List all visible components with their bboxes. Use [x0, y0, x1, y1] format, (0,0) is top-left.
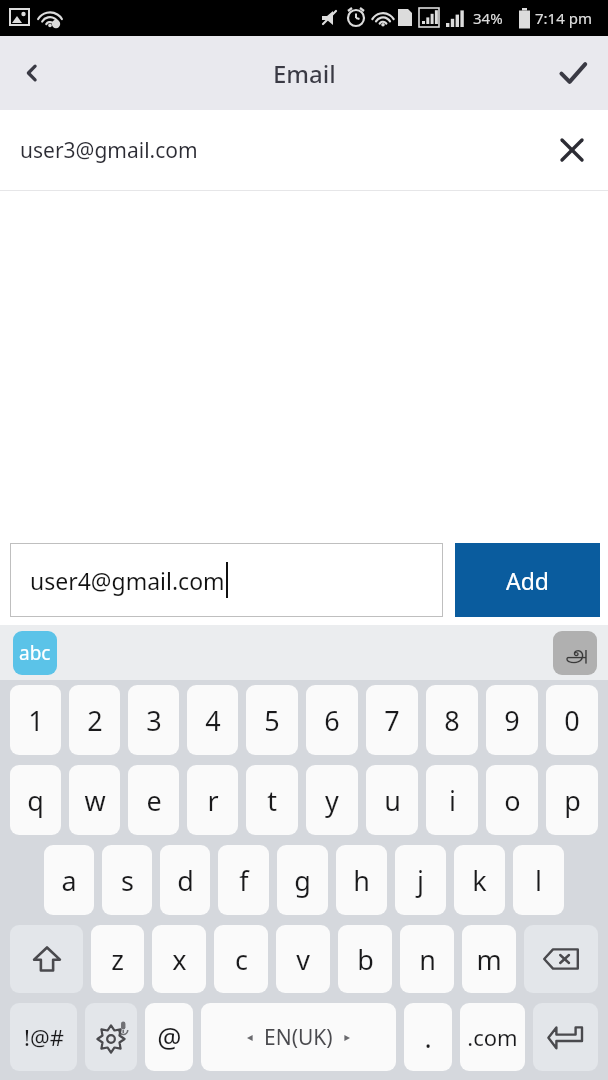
button[interactable]: p	[546, 765, 598, 835]
staticText: m	[476, 941, 502, 978]
staticText: a	[61, 862, 77, 899]
staticText: s	[121, 862, 134, 899]
staticText: r	[207, 782, 219, 819]
staticText: .	[424, 1019, 432, 1056]
staticText: w	[84, 782, 106, 819]
button[interactable]: o	[486, 765, 538, 835]
staticText: j	[417, 862, 424, 899]
button[interactable]: b	[338, 925, 392, 993]
button[interactable]: .	[404, 1003, 452, 1071]
button[interactable]: w	[69, 765, 120, 835]
button[interactable]: Settings	[85, 1003, 137, 1071]
button[interactable]: g	[277, 845, 328, 915]
staticText: user4@gmail.com	[30, 565, 225, 596]
staticText: 7	[384, 702, 400, 739]
staticText: k	[472, 862, 487, 899]
button[interactable]: 5	[246, 685, 298, 755]
staticText: .com	[467, 1022, 518, 1052]
staticText: e	[146, 782, 162, 819]
staticText: 8	[444, 702, 460, 739]
button[interactable]: a	[44, 845, 94, 915]
button[interactable]: Add	[455, 543, 600, 617]
button[interactable]: c	[214, 925, 268, 993]
button[interactable]: Switch language	[553, 631, 597, 675]
button[interactable]: f	[218, 845, 269, 915]
staticText: user3@gmail.com	[20, 136, 536, 165]
button[interactable]: 4	[187, 685, 238, 755]
button[interactable]: Back	[0, 41, 64, 105]
staticText: q	[27, 782, 44, 819]
button[interactable]: .com	[460, 1003, 525, 1071]
staticText: z	[111, 941, 124, 978]
staticText: f	[239, 862, 249, 899]
button[interactable]: Confirm	[538, 38, 608, 108]
staticText: 0	[564, 702, 580, 739]
staticText: n	[419, 941, 436, 978]
button[interactable]: Delete	[524, 925, 598, 993]
button[interactable]: 8	[426, 685, 478, 755]
staticText: 3	[146, 702, 162, 739]
staticText: y	[325, 782, 339, 819]
button[interactable]: q	[10, 765, 61, 835]
staticText: 7:14 pm	[535, 8, 592, 28]
staticText: !@#	[24, 1022, 64, 1052]
staticText: g	[294, 862, 311, 899]
button[interactable]: s	[102, 845, 152, 915]
staticText: p	[564, 782, 581, 819]
button[interactable]: @	[145, 1003, 193, 1071]
button[interactable]: n	[400, 925, 454, 993]
staticText: h	[353, 862, 370, 899]
staticText: 5	[264, 702, 280, 739]
button[interactable]: m	[462, 925, 516, 993]
button[interactable]: h	[336, 845, 387, 915]
button[interactable]: 9	[486, 685, 538, 755]
staticText: v	[296, 941, 310, 978]
staticText: அ	[564, 642, 587, 664]
button[interactable]: 7	[366, 685, 418, 755]
button[interactable]: Shift	[10, 925, 83, 993]
staticText: u	[384, 782, 401, 819]
button[interactable]: v	[276, 925, 330, 993]
staticText: o	[504, 782, 521, 819]
staticText: l	[535, 862, 542, 899]
staticText: 4	[205, 702, 221, 739]
button[interactable]: Enter	[533, 1003, 598, 1071]
button[interactable]: 1	[10, 685, 61, 755]
staticText: b	[357, 941, 374, 978]
button[interactable]: 3	[128, 685, 179, 755]
button[interactable]: abc	[13, 631, 57, 675]
staticText: EN(UK)	[264, 1023, 333, 1052]
staticText: Add	[506, 565, 549, 596]
button[interactable]: u	[366, 765, 418, 835]
staticText: 2	[87, 702, 103, 739]
button[interactable]: d	[160, 845, 210, 915]
button[interactable]: r	[187, 765, 238, 835]
staticText: 1	[28, 702, 44, 739]
button[interactable]: i	[426, 765, 478, 835]
button[interactable]: j	[395, 845, 446, 915]
button[interactable]: l	[513, 845, 564, 915]
button[interactable]: user3@gmail.com	[0, 110, 608, 190]
button[interactable]: user4@gmail.com	[10, 543, 443, 617]
button[interactable]: t	[246, 765, 298, 835]
staticText: 34%	[473, 8, 503, 28]
staticText: d	[177, 862, 194, 899]
button[interactable]: Remove user3@gmail.com	[536, 114, 608, 186]
staticText: @	[157, 1019, 182, 1056]
button[interactable]: !@#	[10, 1003, 77, 1071]
button[interactable]: e	[128, 765, 179, 835]
button[interactable]: y	[306, 765, 358, 835]
button[interactable]: x	[152, 925, 206, 993]
staticText: Email	[273, 57, 336, 90]
button[interactable]: Space	[201, 1003, 396, 1071]
staticText: abc	[19, 640, 51, 666]
staticText: 6	[324, 702, 340, 739]
staticText: t	[267, 782, 277, 819]
button[interactable]: k	[454, 845, 505, 915]
button[interactable]: z	[91, 925, 144, 993]
button[interactable]: 2	[69, 685, 120, 755]
staticText: i	[449, 782, 456, 819]
button[interactable]: 6	[306, 685, 358, 755]
button[interactable]: 0	[546, 685, 598, 755]
staticText: c	[235, 941, 248, 978]
